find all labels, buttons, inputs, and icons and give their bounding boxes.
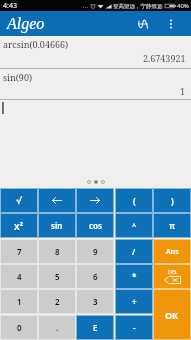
staticText: 7 [17, 246, 22, 257]
staticText: sin(90) [3, 71, 33, 83]
staticText: 2 [55, 296, 60, 307]
button[interactable]: + [116, 290, 152, 313]
button[interactable]: More options [159, 11, 182, 36]
button[interactable]: 5 [39, 265, 75, 288]
staticText: * [132, 271, 137, 282]
staticText: Algeo [7, 15, 45, 33]
staticText: 6 [93, 271, 98, 282]
staticText: X² [14, 220, 24, 232]
staticText: - [133, 322, 136, 333]
button[interactable]: 8 [39, 240, 75, 263]
staticText: . [56, 322, 59, 333]
staticText: π [169, 220, 176, 232]
button[interactable]: 3 [77, 290, 113, 313]
button[interactable]: . [39, 316, 75, 339]
staticText: 0 [17, 322, 22, 333]
staticText: sin [51, 220, 63, 231]
staticText: 2.6743921 [143, 52, 186, 64]
staticText: OK [165, 309, 179, 321]
staticText: cos [89, 220, 102, 231]
staticText: 8 [55, 246, 60, 257]
staticText: 4 [17, 271, 22, 282]
staticText: Ans [166, 247, 179, 257]
button[interactable]: 0 [1, 316, 37, 339]
staticText: ^ [132, 221, 137, 231]
button[interactable]: OK [154, 290, 190, 339]
button[interactable]: 6 [77, 265, 113, 288]
staticText: 9 [93, 246, 98, 257]
staticText: 登高望远，宁静致远 [113, 3, 163, 10]
button[interactable]: ^ [116, 214, 152, 237]
staticText: 1 [180, 85, 186, 97]
button[interactable]: 4 [1, 265, 37, 288]
button[interactable]: Ans [154, 240, 190, 263]
staticText: ( [133, 195, 136, 207]
button[interactable]: Move cursor left [39, 189, 75, 212]
button[interactable]: √ [1, 189, 37, 212]
button[interactable]: X² [1, 214, 37, 237]
button[interactable]: E [77, 316, 113, 339]
staticText: √ [16, 196, 23, 206]
staticText: arcsin(0.04666) [3, 38, 69, 50]
button[interactable]: ) [154, 189, 190, 212]
button[interactable]: Move cursor right [77, 189, 113, 212]
button[interactable]: sin [39, 214, 75, 237]
button[interactable]: ( [116, 189, 152, 212]
button[interactable]: * [116, 265, 152, 288]
staticText: 1 [17, 296, 22, 307]
button[interactable]: cos [77, 214, 113, 237]
button[interactable]: arcsin(0.04666) [0, 36, 191, 69]
button[interactable]: π [154, 214, 190, 237]
staticText: 4:43 [3, 1, 17, 11]
button[interactable]: 2 [39, 290, 75, 313]
button[interactable]: 9 [77, 240, 113, 263]
button[interactable]: 1 [1, 290, 37, 313]
button[interactable]: Delete [154, 265, 190, 288]
button[interactable]: 7 [1, 240, 37, 263]
staticText: DEL [168, 269, 178, 276]
staticText: 5 [55, 271, 60, 282]
staticText: / [132, 246, 136, 257]
button[interactable]: / [116, 240, 152, 263]
staticText: 3 [93, 296, 98, 307]
staticText: + [132, 296, 137, 307]
staticText: ) [171, 195, 174, 207]
button[interactable]: Graph function [127, 11, 159, 36]
staticText: 40% [177, 2, 189, 10]
button[interactable]: sin(90) [0, 69, 191, 100]
staticText: E [93, 322, 98, 333]
button[interactable]: - [116, 316, 152, 339]
